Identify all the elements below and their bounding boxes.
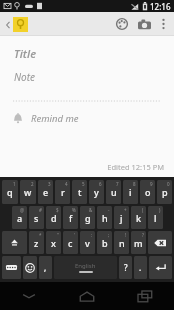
staticText: *: [39, 232, 42, 238]
staticText: :: [91, 232, 93, 238]
staticText: @: [20, 207, 25, 213]
staticText: 5: [82, 181, 85, 187]
button[interactable]: !: [114, 231, 129, 254]
staticText: 4: [65, 181, 68, 187]
staticText: !: [125, 232, 127, 238]
button[interactable]: Navigate up: [3, 17, 30, 32]
button[interactable]: 1: [2, 180, 18, 204]
button[interactable]: Change color: [111, 13, 133, 35]
button[interactable]: 6: [89, 180, 104, 204]
staticText: .: [139, 262, 142, 273]
button[interactable]: -: [97, 206, 112, 229]
staticText: 9: [150, 181, 153, 187]
staticText: $: [56, 207, 59, 213]
button[interactable]: %: [63, 206, 78, 229]
staticText: (: [142, 207, 144, 213]
button[interactable]: @: [12, 206, 27, 229]
button[interactable]: +: [114, 206, 129, 229]
button[interactable]: $: [46, 206, 61, 229]
staticText: 12:16: [150, 1, 171, 12]
staticText: x: [51, 237, 56, 249]
staticText: i: [129, 186, 132, 198]
button[interactable]: 8: [123, 180, 138, 204]
staticText: &: [89, 207, 93, 213]
staticText: 0: [167, 181, 170, 187]
button[interactable]: ?: [119, 256, 132, 279]
staticText: r: [61, 186, 65, 198]
staticText: English: [75, 262, 96, 270]
button[interactable]: ;: [97, 231, 112, 254]
staticText: o: [145, 186, 151, 198]
staticText: 7: [116, 181, 119, 187]
staticText: -: [108, 207, 110, 213]
staticText: e: [43, 186, 49, 198]
staticText: Title: [14, 46, 37, 61]
staticText: ": [57, 232, 59, 238]
button[interactable]: Remind me: [0, 110, 174, 127]
button[interactable]: *: [29, 231, 44, 254]
button[interactable]: Backspace: [148, 231, 172, 254]
button[interactable]: Space: [54, 256, 117, 279]
button[interactable]: Title: [0, 46, 174, 61]
staticText: Edited 12:15 PM: [0, 162, 164, 172]
staticText: b: [102, 237, 108, 249]
staticText: #: [39, 207, 42, 213]
button[interactable]: Symbols: [2, 256, 21, 279]
staticText: k: [136, 212, 142, 224]
staticText: f: [69, 212, 73, 224]
button[interactable]: 0: [157, 180, 172, 204]
staticText: ?: [124, 262, 128, 273]
staticText: 2: [31, 181, 34, 187]
button[interactable]: More options: [155, 13, 171, 35]
staticText: 6: [99, 181, 102, 187]
button[interactable]: (: [131, 206, 146, 229]
staticText: j: [120, 212, 123, 224]
staticText: w: [24, 186, 32, 198]
button[interactable]: ?: [131, 231, 146, 254]
button[interactable]: :: [80, 231, 95, 254]
staticText: s: [34, 212, 39, 224]
button[interactable]: &: [80, 206, 95, 229]
staticText: ): [159, 207, 161, 213]
button[interactable]: 5: [72, 180, 87, 204]
staticText: u: [111, 186, 117, 198]
staticText: Note: [14, 70, 36, 84]
button[interactable]: 7: [106, 180, 121, 204]
button[interactable]: Add image: [133, 13, 155, 35]
staticText: %: [72, 207, 76, 213]
button[interactable]: ': [63, 231, 78, 254]
staticText: g: [85, 212, 91, 224]
button[interactable]: 4: [55, 180, 70, 204]
button[interactable]: ,: [39, 256, 52, 279]
staticText: ': [74, 232, 76, 238]
staticText: q: [7, 186, 13, 198]
staticText: p: [162, 186, 168, 198]
staticText: v: [85, 237, 90, 249]
button[interactable]: ": [46, 231, 61, 254]
staticText: 3: [48, 181, 51, 187]
button[interactable]: Note: [0, 70, 174, 84]
staticText: l: [154, 212, 157, 224]
button[interactable]: Hide keyboard: [0, 282, 58, 310]
button[interactable]: 9: [140, 180, 155, 204]
staticText: Remind me: [31, 112, 79, 125]
button[interactable]: #: [29, 206, 44, 229]
button[interactable]: 3: [38, 180, 53, 204]
button[interactable]: .: [134, 256, 147, 279]
button[interactable]: Enter: [149, 256, 172, 279]
staticText: c: [68, 237, 73, 249]
staticText: ;: [108, 232, 110, 238]
staticText: y: [94, 186, 99, 198]
button[interactable]: 2: [20, 180, 36, 204]
staticText: +: [124, 207, 127, 213]
staticText: z: [34, 237, 39, 249]
staticText: h: [102, 212, 108, 224]
button[interactable]: Shift: [2, 231, 27, 254]
button[interactable]: Home: [58, 282, 116, 310]
staticText: ,: [44, 262, 47, 273]
staticText: m: [134, 237, 143, 249]
button[interactable]: Recent apps: [116, 282, 174, 310]
button[interactable]: Emoji: [23, 256, 37, 279]
staticText: ?: [142, 232, 144, 238]
button[interactable]: ): [148, 206, 163, 229]
